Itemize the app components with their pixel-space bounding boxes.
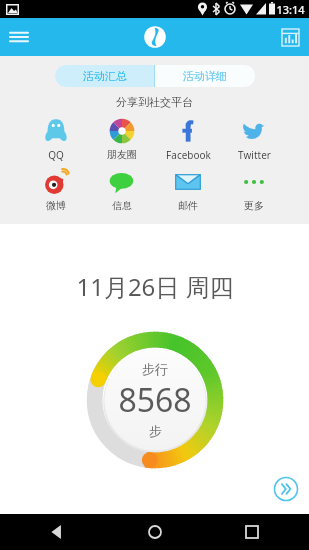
staticText: QQ xyxy=(48,148,64,162)
staticText: Facebook xyxy=(166,148,211,162)
button[interactable]: 更多 xyxy=(221,168,287,212)
staticText: 邮件 xyxy=(178,199,198,212)
staticText: 分享到社交平台 xyxy=(116,95,193,109)
button[interactable]: Recents xyxy=(235,515,269,549)
button[interactable]: 活动详细 xyxy=(155,65,255,87)
button[interactable]: 微博 xyxy=(22,168,89,212)
button[interactable]: QQ xyxy=(22,117,89,162)
button[interactable]: Back xyxy=(40,515,74,549)
button[interactable]: 信息 xyxy=(89,168,155,212)
button[interactable]: Twitter xyxy=(221,117,287,162)
button[interactable]: Home xyxy=(138,515,172,549)
staticText: 活动详细 xyxy=(183,69,227,83)
button[interactable]: Facebook xyxy=(155,117,221,162)
button[interactable]: 朋友圈 xyxy=(89,117,155,161)
staticText: 11月26日 周四 xyxy=(76,270,234,303)
button[interactable]: 活动汇总 xyxy=(55,65,154,87)
staticText: 步行 xyxy=(142,361,168,377)
button[interactable]: Menu xyxy=(0,18,38,56)
button[interactable]: 邮件 xyxy=(155,168,221,212)
staticText: 步 xyxy=(149,423,162,439)
button[interactable]: Next xyxy=(271,474,301,504)
staticText: 8568 xyxy=(118,378,192,422)
button[interactable]: Statistics xyxy=(271,18,309,56)
staticText: 信息 xyxy=(112,199,132,212)
staticText: 朋友圈 xyxy=(107,148,137,161)
staticText: 13:14 xyxy=(276,2,305,17)
staticText: 微博 xyxy=(46,199,66,212)
staticText: Twitter xyxy=(238,148,271,162)
staticText: 活动汇总 xyxy=(83,69,127,83)
staticText: 更多 xyxy=(244,199,264,212)
